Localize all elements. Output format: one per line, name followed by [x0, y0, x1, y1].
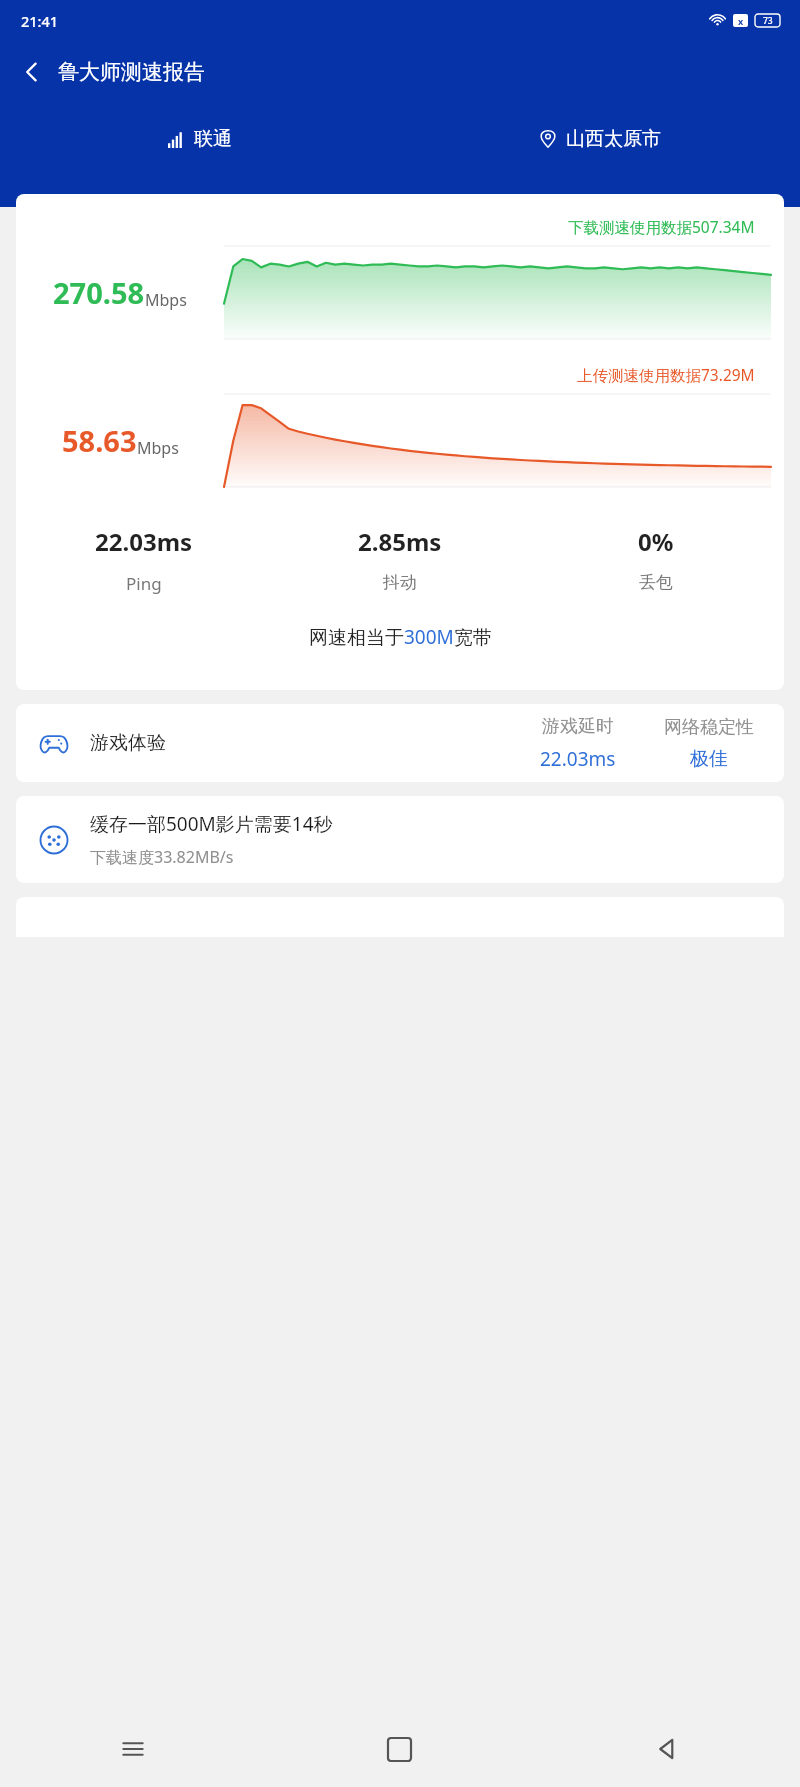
button[interactable]: 22.03ms — [16, 525, 272, 595]
staticText: 270.58 — [53, 273, 145, 312]
staticText: 丢包 — [639, 572, 673, 593]
staticText: 缓存一部500M影片需要14秒 — [90, 811, 333, 837]
button[interactable]: 2.85ms — [272, 525, 528, 593]
button[interactable]: 0% — [528, 525, 784, 593]
staticText: 极佳 — [690, 747, 728, 771]
staticText: Ping — [126, 572, 162, 595]
button[interactable]: 山西太原市 — [400, 127, 800, 151]
button[interactable]: 缓存一部500M影片需要14秒 — [16, 796, 784, 883]
staticText: 下载速度33.82MB/s — [90, 846, 234, 868]
staticText: 73 — [763, 15, 773, 27]
button[interactable]: 联通 — [0, 127, 400, 151]
button[interactable]: Back — [0, 41, 800, 103]
staticText: 0% — [638, 525, 674, 558]
button[interactable]: Back — [12, 52, 52, 92]
staticText: 下载测速使用数据507.34M — [568, 216, 755, 237]
staticText: 抖动 — [383, 572, 417, 593]
staticText: 网速相当于300M宽带 — [309, 624, 492, 650]
button[interactable]: Back — [533, 1711, 800, 1787]
staticText: x — [738, 15, 744, 27]
button[interactable]: 下载测速使用数据507.34M — [16, 194, 784, 690]
staticText: 游戏延时 — [542, 715, 614, 738]
staticText: 58.63 — [62, 421, 137, 460]
staticText: 22.03ms — [95, 525, 193, 558]
staticText: 21:41 — [21, 11, 59, 31]
staticText: 上传测速使用数据73.29M — [577, 364, 755, 385]
button[interactable]: Home — [266, 1711, 533, 1787]
staticText: 游戏体验 — [90, 731, 166, 755]
button[interactable]: Recents — [0, 1711, 266, 1787]
staticText: 2.85ms — [358, 525, 442, 558]
staticText: 鲁大师测速报告 — [58, 59, 205, 85]
staticText: Mbps — [145, 289, 187, 311]
button[interactable]: 游戏体验 — [16, 704, 784, 782]
staticText: 网络稳定性 — [664, 716, 754, 739]
staticText: Mbps — [137, 437, 179, 459]
staticText: 22.03ms — [540, 746, 616, 772]
staticText: 联通 — [194, 127, 232, 151]
staticText: 山西太原市 — [566, 127, 661, 151]
